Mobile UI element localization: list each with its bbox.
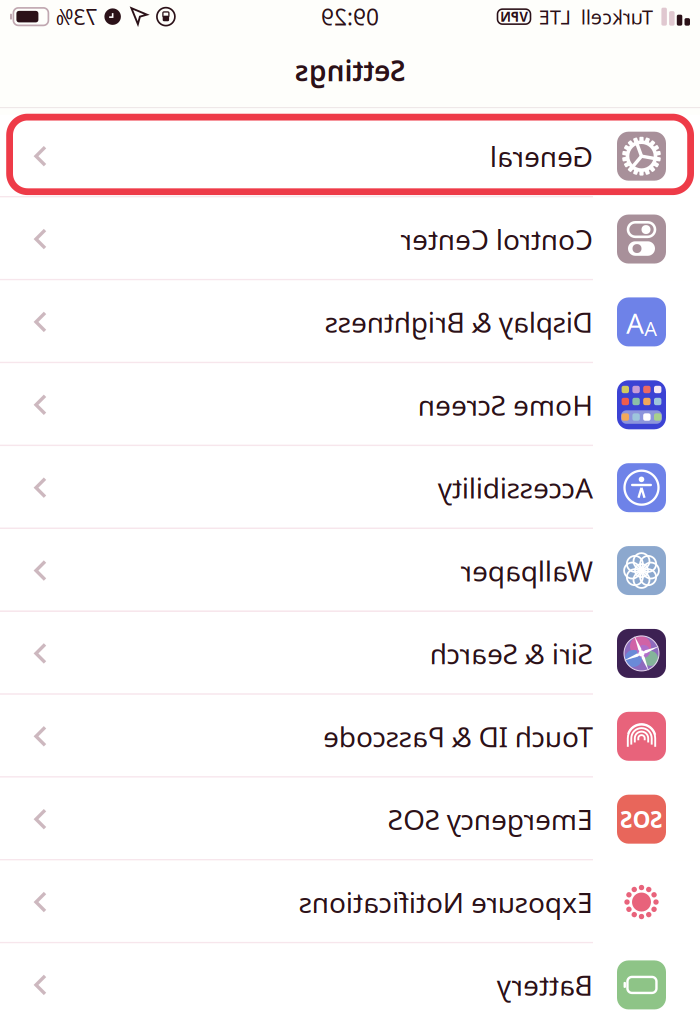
button[interactable]: Wallpaper [0,529,700,612]
staticText: Exposure Notifications [107,883,401,921]
staticText: LTE [129,3,161,30]
button[interactable]: Accessibility [0,446,700,529]
staticText: 73% [603,2,645,31]
button[interactable]: Touch ID & Passcode [0,695,700,778]
button[interactable]: Home Screen [0,363,700,446]
button[interactable]: General [0,115,700,198]
button[interactable]: Control Center [0,198,700,280]
button[interactable]: Settings [0,34,700,107]
staticText: A [43,315,56,342]
button[interactable]: A [0,280,700,363]
button[interactable]: Battery [0,943,700,1026]
staticText: Turkcell [47,3,119,30]
staticText: SOS [37,804,79,834]
staticText: Touch ID & Passcode [107,718,377,755]
staticText: Display & Brightness [107,303,375,340]
button[interactable]: Exposure Notifications [0,861,700,943]
staticText: 09:29 [321,2,379,32]
button[interactable]: Siri & Search [0,612,700,695]
button[interactable]: SOS [0,778,700,861]
staticText: Settings [294,52,405,89]
staticText: VPN [172,8,200,25]
